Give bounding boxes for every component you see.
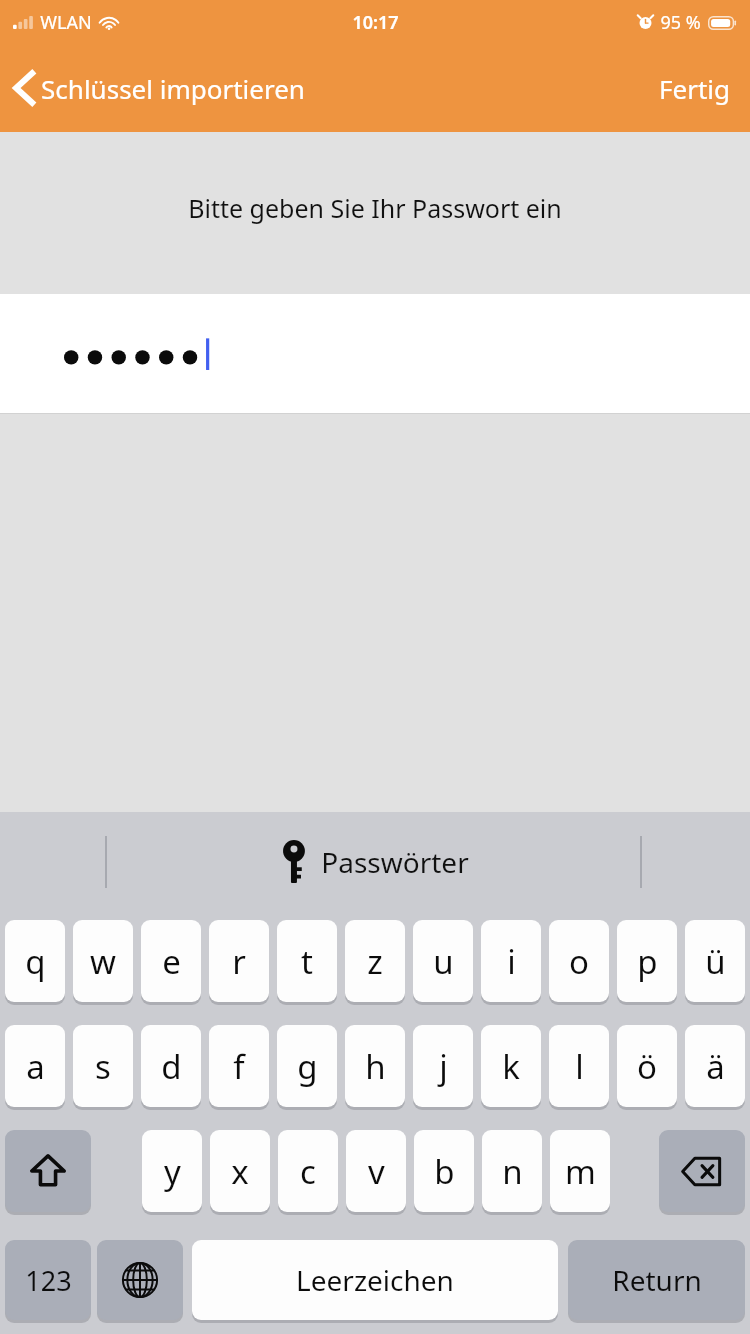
staticText: Passwörter	[321, 843, 469, 881]
staticText: g	[297, 1044, 318, 1089]
staticText: ö	[637, 1044, 657, 1089]
staticText: o	[569, 939, 589, 984]
staticText: 95 %	[660, 10, 701, 35]
staticText: Schlüssel importieren	[41, 71, 305, 106]
button[interactable]: r	[209, 920, 269, 1002]
staticText: x	[231, 1149, 249, 1194]
staticText: Bitte geben Sie Ihr Passwort ein	[188, 191, 562, 225]
button[interactable]: w	[73, 920, 133, 1002]
staticText: t	[301, 939, 313, 984]
button[interactable]: u	[413, 920, 473, 1002]
button[interactable]: j	[413, 1025, 473, 1107]
button[interactable]: l	[549, 1025, 609, 1107]
button[interactable]: z	[345, 920, 405, 1002]
button[interactable]: ö	[617, 1025, 677, 1107]
staticText: f	[233, 1044, 245, 1089]
staticText: a	[26, 1044, 45, 1089]
button[interactable]: f	[209, 1025, 269, 1107]
button[interactable]: Fertig	[639, 61, 750, 116]
button[interactable]: m	[550, 1130, 610, 1212]
staticText: e	[162, 939, 181, 984]
button[interactable]: c	[278, 1130, 338, 1212]
button[interactable]: ä	[685, 1025, 745, 1107]
button[interactable]: n	[482, 1130, 542, 1212]
staticText: Leerzeichen	[296, 1261, 454, 1299]
staticText: 10:17	[352, 10, 399, 35]
staticText: v	[368, 1149, 385, 1194]
button[interactable]: t	[277, 920, 337, 1002]
button[interactable]: h	[345, 1025, 405, 1107]
staticText: ü	[705, 939, 726, 984]
button[interactable]: x	[210, 1130, 270, 1212]
button[interactable]: d	[141, 1025, 201, 1107]
staticText: j	[439, 1044, 448, 1089]
staticText: m	[565, 1149, 596, 1194]
staticText: r	[232, 939, 246, 984]
button[interactable]: Sprache wechseln	[97, 1240, 183, 1320]
staticText: k	[502, 1044, 520, 1089]
staticText: y	[164, 1149, 181, 1194]
button[interactable]: Return	[568, 1240, 745, 1320]
button[interactable]: i	[481, 920, 541, 1002]
button[interactable]: Umschalten	[5, 1130, 91, 1212]
button[interactable]: o	[549, 920, 609, 1002]
button[interactable]: a	[5, 1025, 65, 1107]
staticText: p	[637, 939, 658, 984]
staticText: b	[434, 1149, 455, 1194]
staticText: Fertig	[659, 71, 730, 106]
button[interactable]: p	[617, 920, 677, 1002]
button[interactable]: v	[346, 1130, 406, 1212]
staticText: s	[95, 1044, 111, 1089]
staticText: ä	[706, 1044, 725, 1089]
staticText: l	[575, 1044, 584, 1089]
staticText: d	[161, 1044, 182, 1089]
button[interactable]: Passwörter	[282, 840, 469, 884]
staticText: h	[365, 1044, 386, 1089]
button[interactable]	[0, 294, 750, 414]
button[interactable]: s	[73, 1025, 133, 1107]
staticText: 123	[25, 1262, 72, 1299]
button[interactable]: Löschen	[659, 1130, 745, 1212]
staticText: q	[25, 939, 46, 984]
staticText: w	[90, 939, 116, 984]
staticText: z	[367, 939, 383, 984]
button[interactable]: Schlüssel importieren	[0, 62, 319, 114]
button[interactable]: q	[5, 920, 65, 1002]
staticText: c	[300, 1149, 316, 1194]
staticText: Return	[612, 1261, 702, 1299]
button[interactable]: ü	[685, 920, 745, 1002]
staticText: u	[433, 939, 454, 984]
staticText: n	[502, 1149, 523, 1194]
button[interactable]: Leerzeichen	[192, 1240, 558, 1320]
button[interactable]: e	[141, 920, 201, 1002]
button[interactable]: g	[277, 1025, 337, 1107]
button[interactable]: y	[142, 1130, 202, 1212]
staticText: i	[507, 939, 516, 984]
button[interactable]: k	[481, 1025, 541, 1107]
button[interactable]: b	[414, 1130, 474, 1212]
button[interactable]: 123	[5, 1240, 91, 1320]
staticText: WLAN	[40, 10, 92, 35]
